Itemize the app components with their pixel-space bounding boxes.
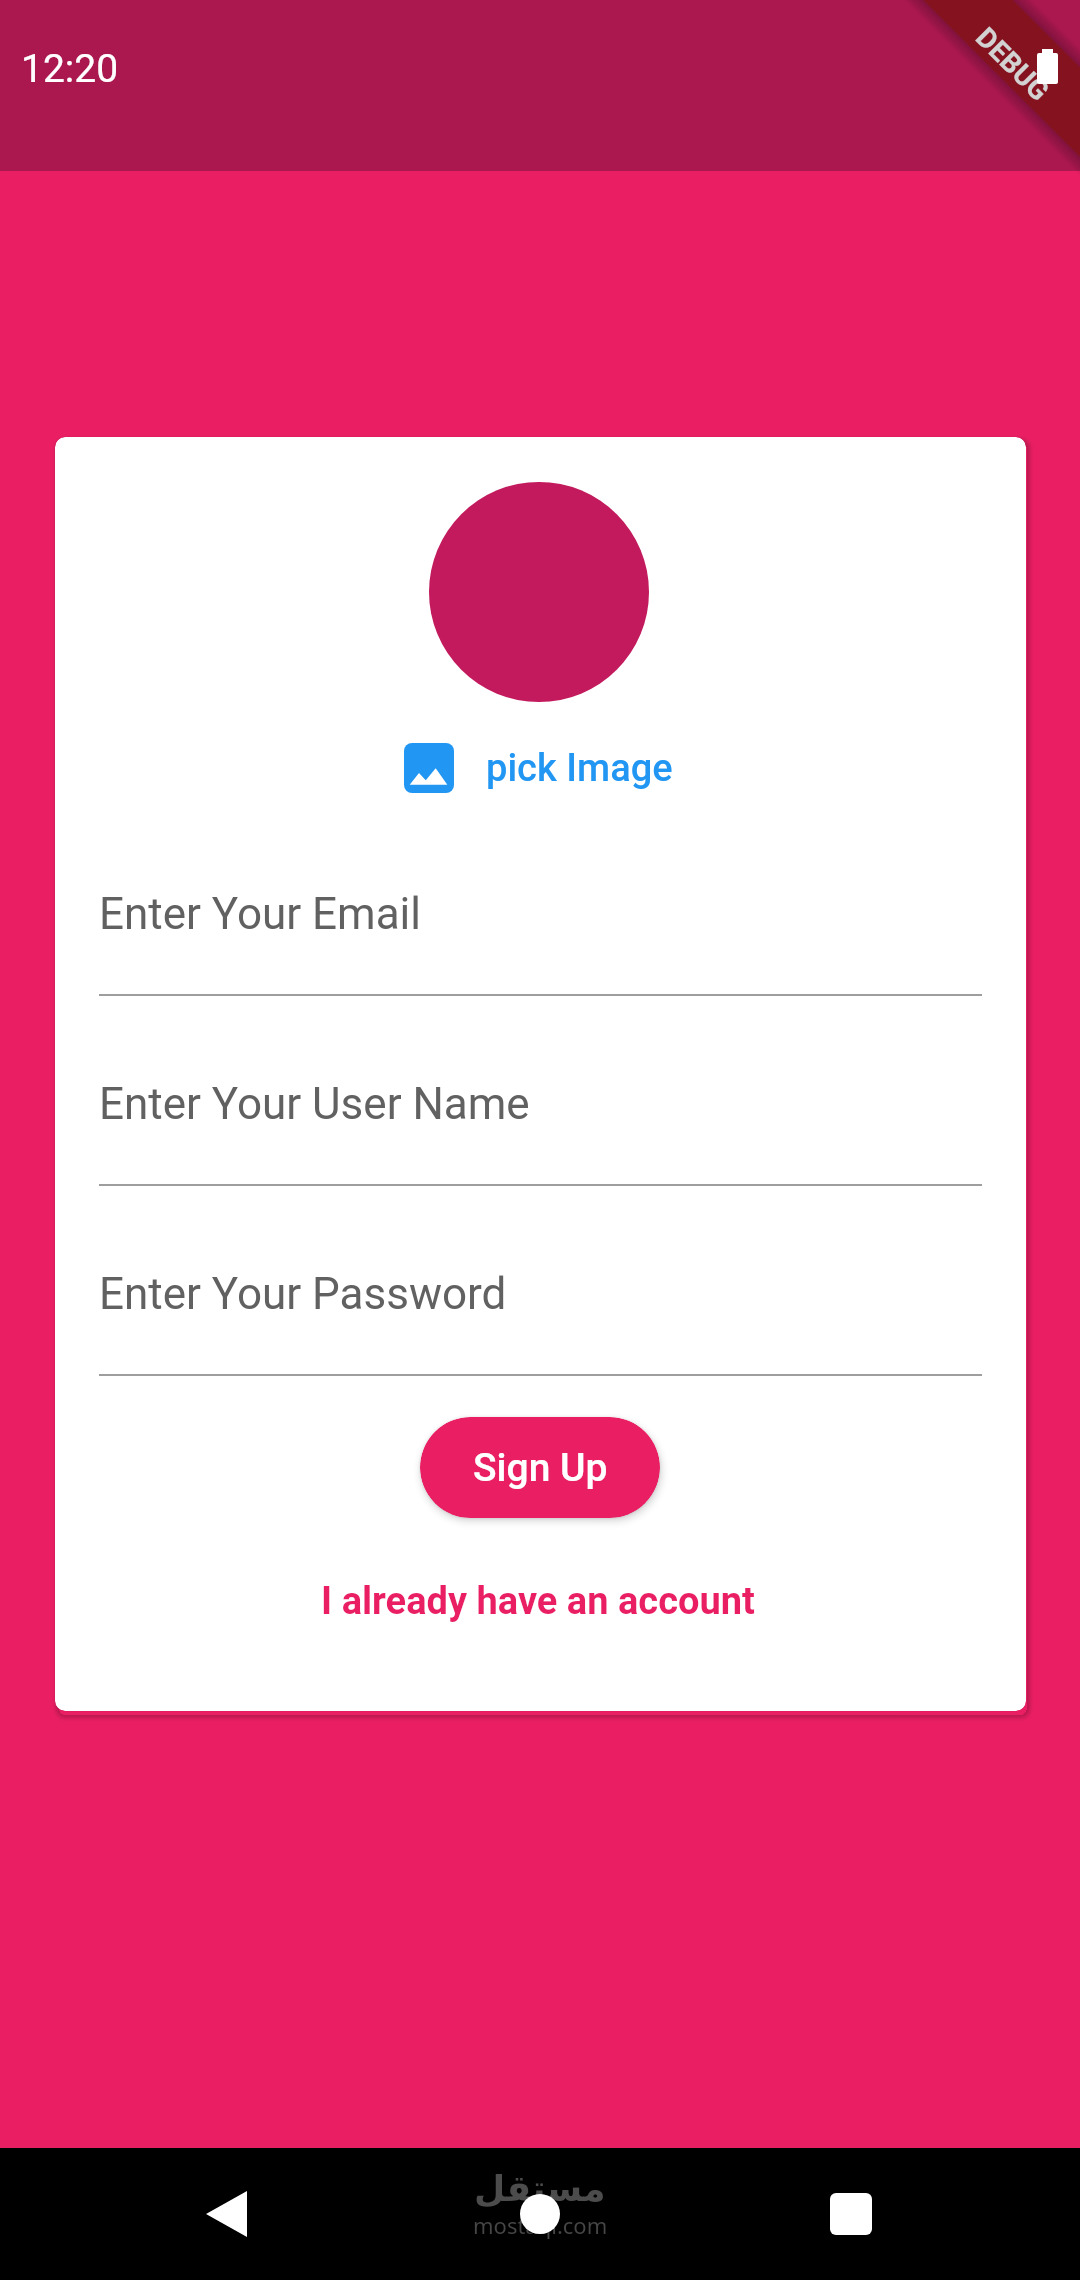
- button[interactable]: Enter Your User Name: [99, 1066, 982, 1188]
- staticText: mostaql.com: [473, 2210, 608, 2240]
- button[interactable]: pick Image: [404, 743, 673, 793]
- staticText: Sign Up: [473, 1445, 608, 1491]
- staticText: مستقل: [474, 2168, 606, 2210]
- button[interactable]: Recent apps: [811, 2174, 891, 2254]
- button[interactable]: Profile picture: [429, 482, 649, 702]
- button[interactable]: I already have an account: [55, 1579, 1023, 1624]
- button[interactable]: Back: [186, 2174, 266, 2254]
- button[interactable]: Enter Your Email: [99, 876, 982, 998]
- button[interactable]: Home: [500, 2174, 580, 2254]
- staticText: Enter Your User Name: [99, 1078, 530, 1130]
- staticText: pick Image: [486, 746, 673, 791]
- staticText: DEBUG: [969, 21, 1056, 108]
- staticText: I already have an account: [321, 1579, 755, 1624]
- staticText: Enter Your Password: [99, 1268, 507, 1320]
- staticText: 12:20: [21, 46, 119, 92]
- staticText: Enter Your Email: [99, 888, 421, 940]
- button[interactable]: Sign Up: [420, 1417, 660, 1518]
- button[interactable]: Enter Your Password: [99, 1256, 982, 1378]
